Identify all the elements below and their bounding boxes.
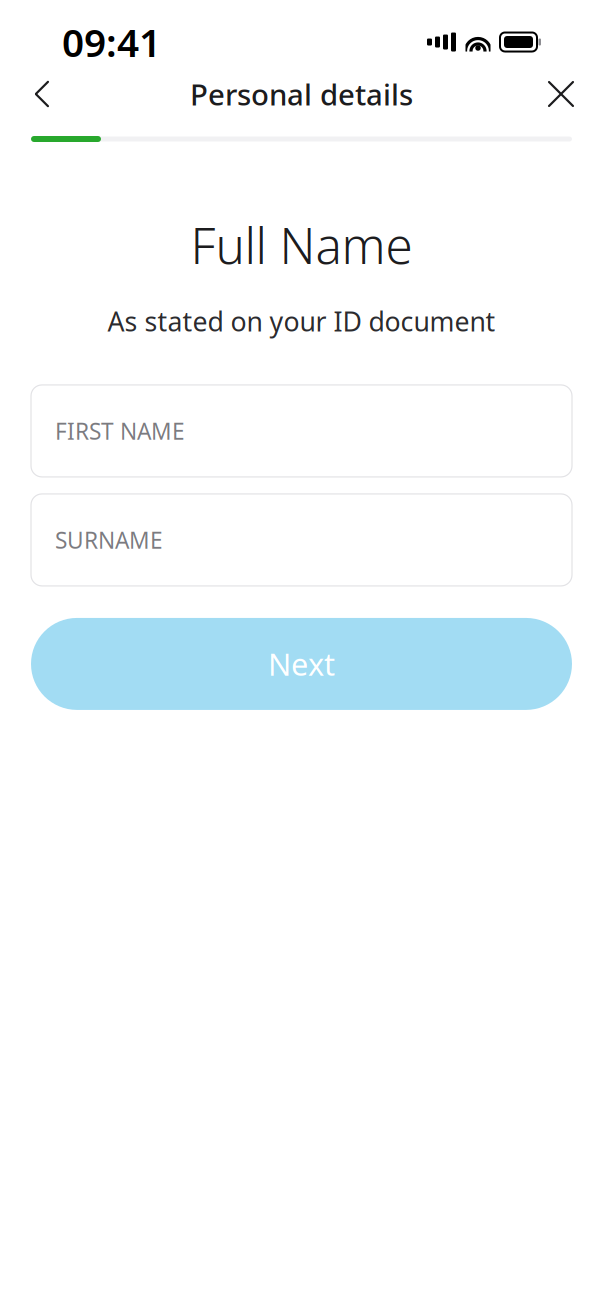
- staticText: 09:41: [62, 16, 161, 68]
- staticText: SURNAME: [55, 525, 163, 555]
- staticText: As stated on your ID document: [107, 303, 495, 339]
- button[interactable]: Next: [31, 618, 572, 710]
- button[interactable]: Close: [533, 66, 589, 122]
- button[interactable]: Back: [14, 66, 70, 122]
- staticText: FIRST NAME: [55, 416, 185, 446]
- staticText: Personal details: [190, 74, 413, 113]
- staticText: Next: [268, 644, 335, 684]
- button[interactable]: SURNAME: [31, 494, 572, 586]
- staticText: Full Name: [190, 212, 412, 277]
- button[interactable]: FIRST NAME: [31, 385, 572, 477]
